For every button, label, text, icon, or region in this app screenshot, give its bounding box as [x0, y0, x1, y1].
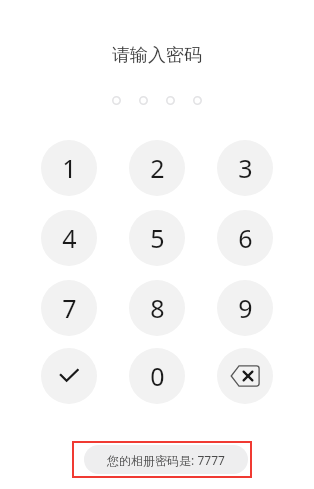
staticText: 2 [150, 151, 165, 185]
staticText: 6 [238, 221, 253, 255]
button[interactable]: Backspace [217, 348, 273, 404]
button[interactable]: 9 [217, 280, 273, 336]
button[interactable]: Confirm [41, 348, 97, 404]
button[interactable]: 您的相册密码是: 7777 [84, 445, 248, 474]
button[interactable]: 1 [41, 140, 97, 196]
button[interactable]: 3 [217, 140, 273, 196]
staticText: 5 [150, 221, 165, 255]
button[interactable]: 4 [41, 210, 97, 266]
staticText: 您的相册密码是: 7777 [107, 452, 225, 468]
button[interactable]: 7 [41, 280, 97, 336]
button[interactable]: 6 [217, 210, 273, 266]
staticText: 7 [62, 291, 77, 325]
button[interactable]: 5 [129, 210, 185, 266]
staticText: 4 [62, 221, 77, 255]
staticText: 9 [238, 291, 253, 325]
button[interactable]: 2 [129, 140, 185, 196]
staticText: 0 [150, 359, 165, 393]
staticText: 1 [62, 151, 77, 185]
staticText: 3 [238, 151, 253, 185]
staticText: 请输入密码 [0, 44, 314, 67]
button[interactable]: 8 [129, 280, 185, 336]
button[interactable]: 0 [129, 348, 185, 404]
staticText: 8 [150, 291, 165, 325]
